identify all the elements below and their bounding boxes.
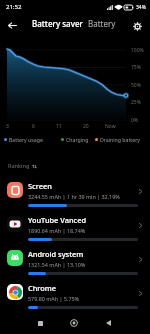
staticText: 579.80 mAh | 5.75% — [28, 295, 80, 302]
staticText: 75% — [131, 64, 141, 71]
staticText: Charging — [66, 136, 89, 143]
staticText: YouTube Vanced — [28, 215, 86, 225]
button[interactable]: Battery saver — [30, 16, 85, 31]
staticText: 3244.55 mAh | 1 hr 39 min | 32.19% — [28, 193, 120, 200]
button[interactable]: YouTube Vanced — [0, 210, 150, 244]
staticText: 20 — [83, 123, 89, 130]
button[interactable]: Chrome — [0, 278, 150, 312]
staticText: Ranking — [8, 162, 30, 170]
staticText: 1321.54 mAh | 13.10% — [28, 261, 86, 268]
staticText: Draining battery — [100, 136, 140, 143]
staticText: 21:52 — [6, 3, 22, 11]
staticText: Chrome — [28, 283, 57, 293]
button[interactable]: Recent apps — [28, 311, 52, 334]
staticText: Android system — [28, 249, 84, 259]
button[interactable]: Ranking — [6, 160, 39, 172]
staticText: 0% — [131, 117, 139, 124]
staticText: 11 — [56, 123, 62, 130]
button[interactable]: Back — [96, 311, 120, 334]
staticText: 34% — [136, 4, 146, 11]
staticText: Screen — [28, 181, 52, 191]
staticText: 100% — [131, 47, 144, 54]
staticText: Battery usage — [9, 136, 43, 143]
button[interactable]: Screen — [0, 176, 150, 210]
staticText: 6 — [32, 123, 35, 130]
button[interactable]: Home — [62, 311, 86, 334]
button[interactable]: Android system — [0, 244, 150, 278]
staticText: 3 — [6, 123, 9, 130]
button[interactable]: Settings — [128, 17, 146, 35]
button[interactable]: Back — [4, 17, 21, 34]
staticText: 1890.64 mAh | 18.74% — [28, 227, 86, 234]
button[interactable]: Battery — [86, 16, 118, 31]
staticText: Now — [105, 123, 116, 130]
staticText: 50% — [131, 82, 141, 89]
staticText: Battery — [88, 18, 116, 29]
staticText: 25% — [131, 99, 141, 106]
staticText: Battery saver — [32, 18, 83, 29]
